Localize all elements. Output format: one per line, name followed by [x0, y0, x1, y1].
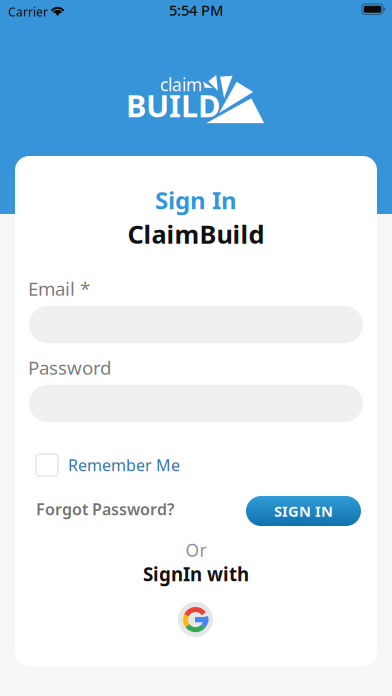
staticText: Or: [185, 538, 206, 561]
button[interactable]: SIGN IN: [246, 496, 361, 526]
staticText: Remember Me: [68, 454, 180, 476]
staticText: Email *: [28, 276, 90, 301]
staticText: Forgot Password?: [36, 498, 174, 520]
staticText: SIGN IN: [274, 501, 333, 521]
staticText: 5:54 PM: [169, 0, 223, 20]
staticText: BUILD: [126, 85, 220, 126]
staticText: claim: [160, 73, 202, 96]
button[interactable]: Sign in with Google: [178, 602, 213, 637]
staticText: ClaimBuild: [127, 217, 264, 251]
button[interactable]: Forgot Password?: [36, 494, 211, 524]
staticText: SignIn with: [143, 562, 249, 586]
staticText: Password: [28, 355, 111, 380]
staticText: Sign In: [155, 184, 237, 216]
staticText: Carrier: [8, 4, 48, 20]
button[interactable]: Remember Me: [36, 453, 236, 477]
